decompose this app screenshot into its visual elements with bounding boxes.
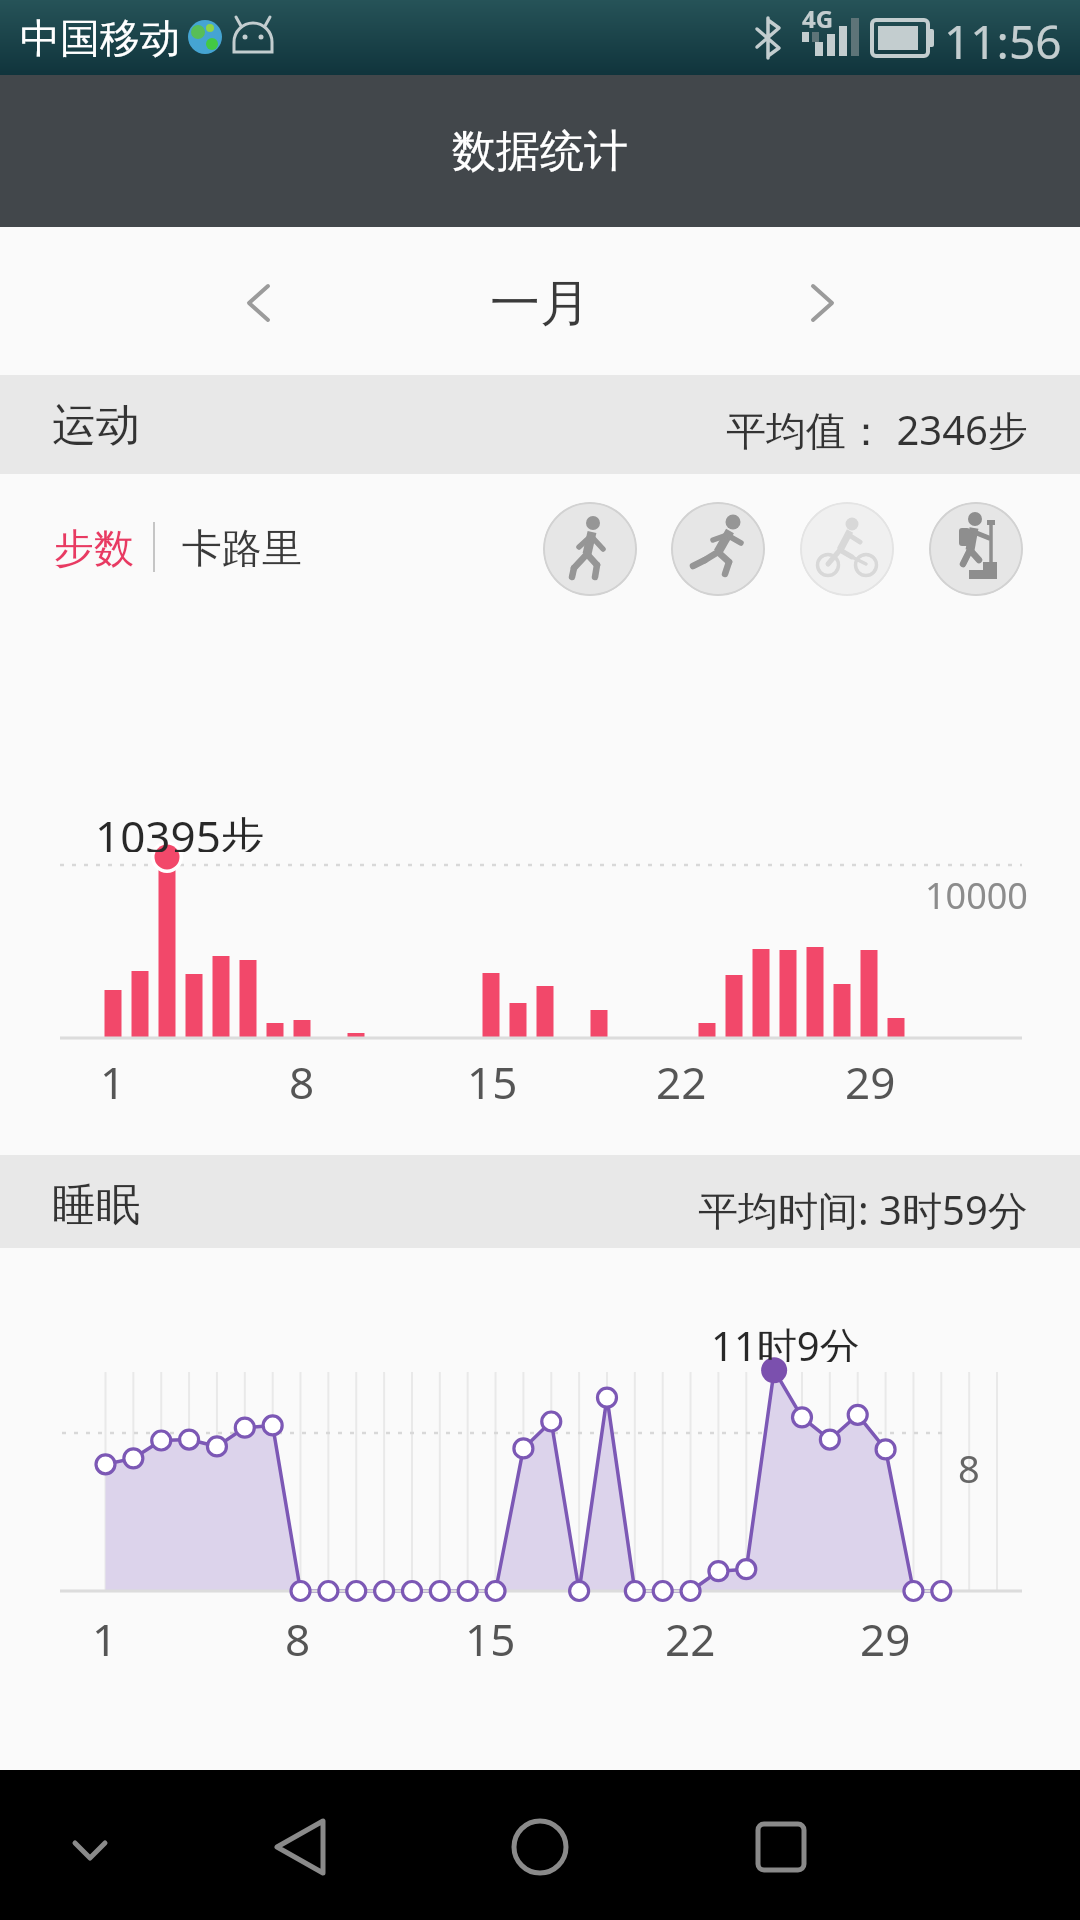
staticText: 8: [958, 1442, 980, 1486]
button[interactable]: [731, 1795, 831, 1895]
staticText: 1: [100, 1052, 126, 1102]
button[interactable]: [770, 260, 870, 345]
button[interactable]: [55, 1810, 125, 1880]
button[interactable]: [543, 502, 637, 596]
button[interactable]: [490, 1795, 590, 1895]
staticText: 睡眠: [52, 1178, 140, 1232]
staticText: 10395步: [95, 806, 265, 852]
staticText: 8: [285, 1609, 311, 1659]
button[interactable]: [250, 1795, 350, 1895]
button[interactable]: 步数: [54, 522, 164, 574]
staticText: 数据统计: [452, 124, 628, 179]
button[interactable]: [671, 502, 765, 596]
staticText: 平均时间: 3时59分: [698, 1182, 1028, 1230]
staticText: 卡路里: [182, 523, 302, 573]
button[interactable]: [800, 502, 894, 596]
staticText: 10000: [925, 871, 1028, 915]
staticText: 11时9分: [711, 1318, 860, 1362]
button[interactable]: [929, 502, 1023, 596]
staticText: 平均值： 2346步: [726, 402, 1028, 450]
button[interactable]: 卡路里: [182, 522, 342, 574]
staticText: 29: [860, 1609, 911, 1659]
staticText: 1: [92, 1609, 118, 1659]
staticText: 步数: [54, 523, 134, 573]
staticText: 一月: [490, 272, 590, 332]
staticText: 22: [656, 1052, 707, 1102]
staticText: 运动: [52, 398, 140, 452]
staticText: 29: [845, 1052, 896, 1102]
staticText: 中国移动: [20, 13, 180, 63]
staticText: 22: [665, 1609, 716, 1659]
staticText: 4G: [802, 2, 834, 32]
staticText: 11:56: [944, 10, 1062, 65]
button[interactable]: [210, 260, 310, 345]
staticText: 8: [289, 1052, 315, 1102]
staticText: 15: [467, 1052, 518, 1102]
staticText: 15: [465, 1609, 516, 1659]
